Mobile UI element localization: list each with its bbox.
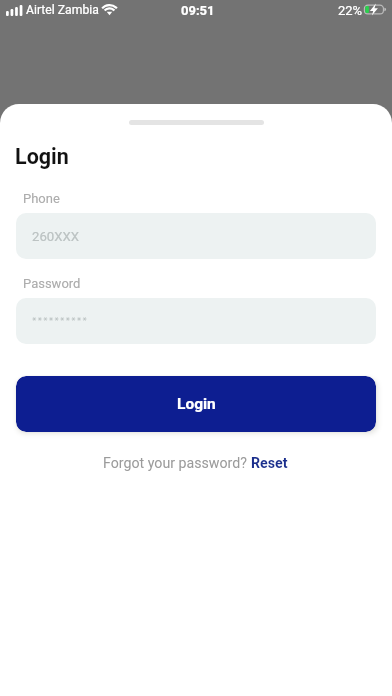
staticText: Phone	[23, 191, 60, 206]
staticText: Airtel Zambia	[26, 3, 99, 17]
button[interactable]: Reset	[251, 453, 288, 474]
staticText: 260XXX	[32, 229, 80, 244]
button[interactable]: Login	[16, 376, 376, 432]
staticText: Login	[177, 395, 216, 413]
staticText: Reset	[251, 455, 288, 472]
staticText: Forgot your password?	[103, 455, 251, 472]
staticText: Password	[23, 276, 81, 291]
button[interactable]: 260XXX	[16, 213, 376, 259]
staticText: 09:51	[181, 3, 215, 18]
staticText: 22%	[338, 3, 363, 18]
staticText: Login	[15, 144, 69, 169]
